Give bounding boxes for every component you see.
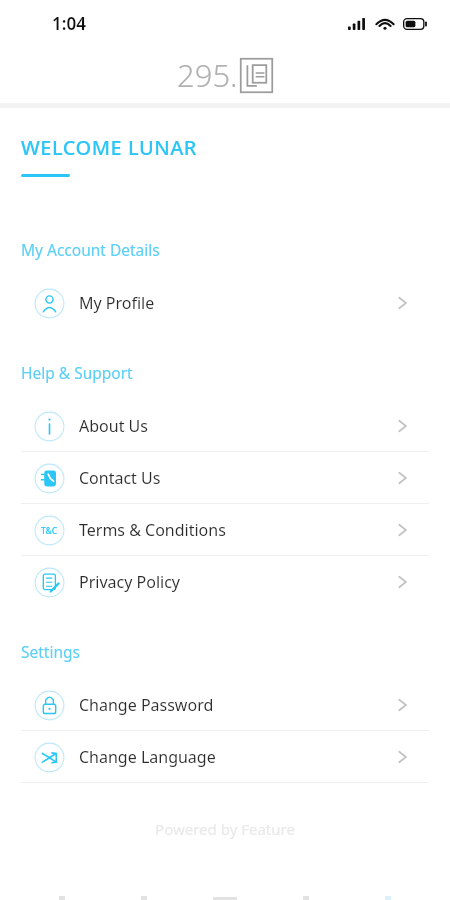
- button[interactable]: My Profile: [21, 277, 429, 328]
- staticText: Help & Support: [21, 362, 133, 383]
- staticText: Change Password: [79, 694, 214, 716]
- staticText: My Profile: [79, 292, 155, 314]
- staticText: Privacy Policy: [79, 571, 180, 593]
- button[interactable]: Contact Us: [21, 452, 429, 503]
- button[interactable]: Profile: [369, 888, 407, 900]
- button[interactable]: Change Password: [21, 679, 429, 730]
- button[interactable]: Change Language: [21, 731, 429, 782]
- button[interactable]: Home: [43, 888, 81, 900]
- staticText: About Us: [79, 415, 148, 437]
- staticText: Contact Us: [79, 467, 161, 489]
- button[interactable]: T&C: [21, 504, 429, 555]
- button[interactable]: Offers: [287, 888, 325, 900]
- staticText: My Account Details: [21, 239, 160, 260]
- button[interactable]: Privacy Policy: [21, 556, 429, 607]
- button[interactable]: Search: [125, 888, 163, 900]
- staticText: Powered by Feature: [0, 819, 450, 839]
- button[interactable]: Scan: [206, 888, 244, 900]
- button[interactable]: About Us: [21, 400, 429, 451]
- staticText: Settings: [21, 641, 80, 662]
- staticText: WELCOME LUNAR: [21, 134, 197, 161]
- staticText: Terms & Conditions: [79, 519, 226, 541]
- staticText: T&C: [41, 525, 58, 537]
- staticText: 295.: [177, 54, 238, 96]
- staticText: 1:04: [52, 12, 86, 35]
- staticText: Change Language: [79, 746, 216, 768]
